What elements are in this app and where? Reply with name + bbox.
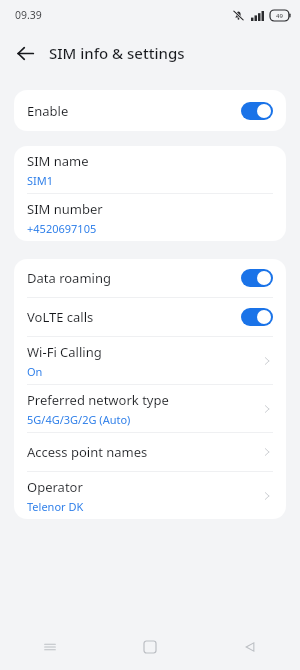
staticText: Operator (27, 478, 83, 496)
button[interactable]: Home (100, 624, 200, 670)
staticText: SIM info & settings (49, 43, 185, 63)
button[interactable]: Recent apps (0, 624, 100, 670)
button[interactable]: VoLTE calls (14, 298, 286, 336)
staticText: SIM number (27, 200, 103, 218)
staticText: +4520697105 (27, 221, 97, 236)
button[interactable]: Enable (14, 90, 286, 131)
staticText: 09.39 (15, 8, 42, 22)
staticText: Enable (27, 102, 69, 120)
staticText: SIM1 (27, 173, 54, 188)
staticText: On (27, 364, 43, 379)
staticText: Access point names (27, 443, 148, 461)
staticText: Data roaming (27, 269, 111, 287)
staticText: SIM name (27, 152, 89, 170)
staticText: 49 (276, 12, 283, 20)
button[interactable]: Preferred network type (14, 385, 286, 432)
button[interactable]: Access point names (14, 433, 286, 471)
button[interactable]: SIM number (14, 194, 286, 241)
button[interactable]: Back (200, 624, 300, 670)
button[interactable]: Back (8, 36, 42, 70)
button[interactable]: SIM name (14, 146, 286, 193)
staticText: Preferred network type (27, 391, 169, 409)
button[interactable]: Data roaming (14, 259, 286, 297)
staticText: 5G/4G/3G/2G (Auto) (27, 412, 131, 427)
staticText: Telenor DK (27, 499, 84, 514)
button[interactable]: Operator (14, 472, 286, 519)
staticText: VoLTE calls (27, 308, 94, 326)
staticText: Wi-Fi Calling (27, 343, 102, 361)
button[interactable]: Wi-Fi Calling (14, 337, 286, 384)
